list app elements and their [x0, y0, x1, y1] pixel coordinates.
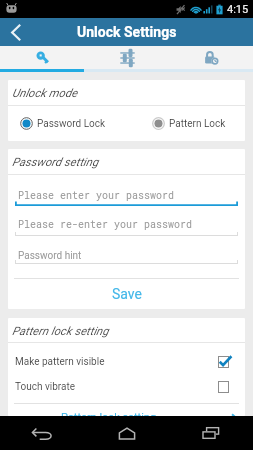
staticText: Please re-enter your password	[18, 218, 193, 231]
staticText: Unlock mode	[12, 86, 78, 99]
button[interactable]: Settings tab	[85, 46, 169, 69]
staticText: Pattern lock setting	[61, 411, 157, 416]
staticText: Password setting	[12, 155, 99, 168]
staticText: 4:15	[227, 3, 249, 16]
button[interactable]: Home	[85, 416, 169, 450]
staticText: Please enter your password	[18, 189, 175, 202]
staticText: Unlock Settings	[77, 24, 177, 40]
button[interactable]: Save	[8, 279, 245, 309]
button[interactable]: Password Lock	[20, 106, 123, 141]
staticText: Password Lock	[37, 118, 106, 130]
staticText: Pattern lock setting	[12, 324, 109, 337]
button[interactable]: Make pattern visible	[15, 349, 229, 374]
staticText: Make pattern visible	[15, 356, 218, 368]
button[interactable]: Back	[0, 416, 85, 450]
button[interactable]: Lock timing tab	[169, 46, 253, 69]
button[interactable]: Recent apps	[169, 416, 253, 450]
staticText: Touch vibrate	[15, 381, 218, 393]
button[interactable]: Pattern lock setting	[8, 404, 245, 416]
button[interactable]: Pattern Lock	[152, 106, 237, 141]
button[interactable]: Back	[0, 18, 32, 46]
staticText: Password hint	[18, 250, 82, 262]
button[interactable]: Password lock tab	[0, 46, 85, 69]
staticText: Pattern Lock	[169, 118, 226, 130]
button[interactable]: Touch vibrate	[15, 374, 229, 399]
staticText: Save	[112, 286, 142, 302]
